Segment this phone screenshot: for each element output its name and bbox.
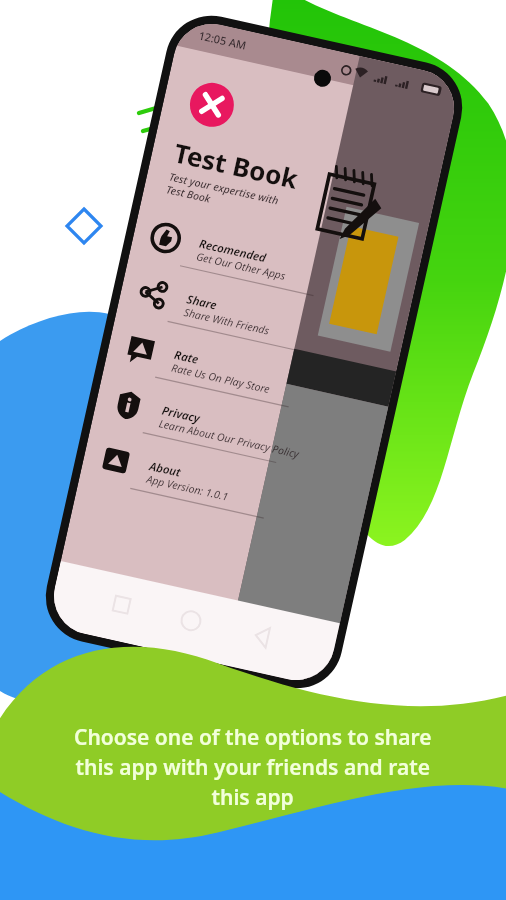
- button[interactable]: Test Book promo screen: [0, 0, 506, 900]
